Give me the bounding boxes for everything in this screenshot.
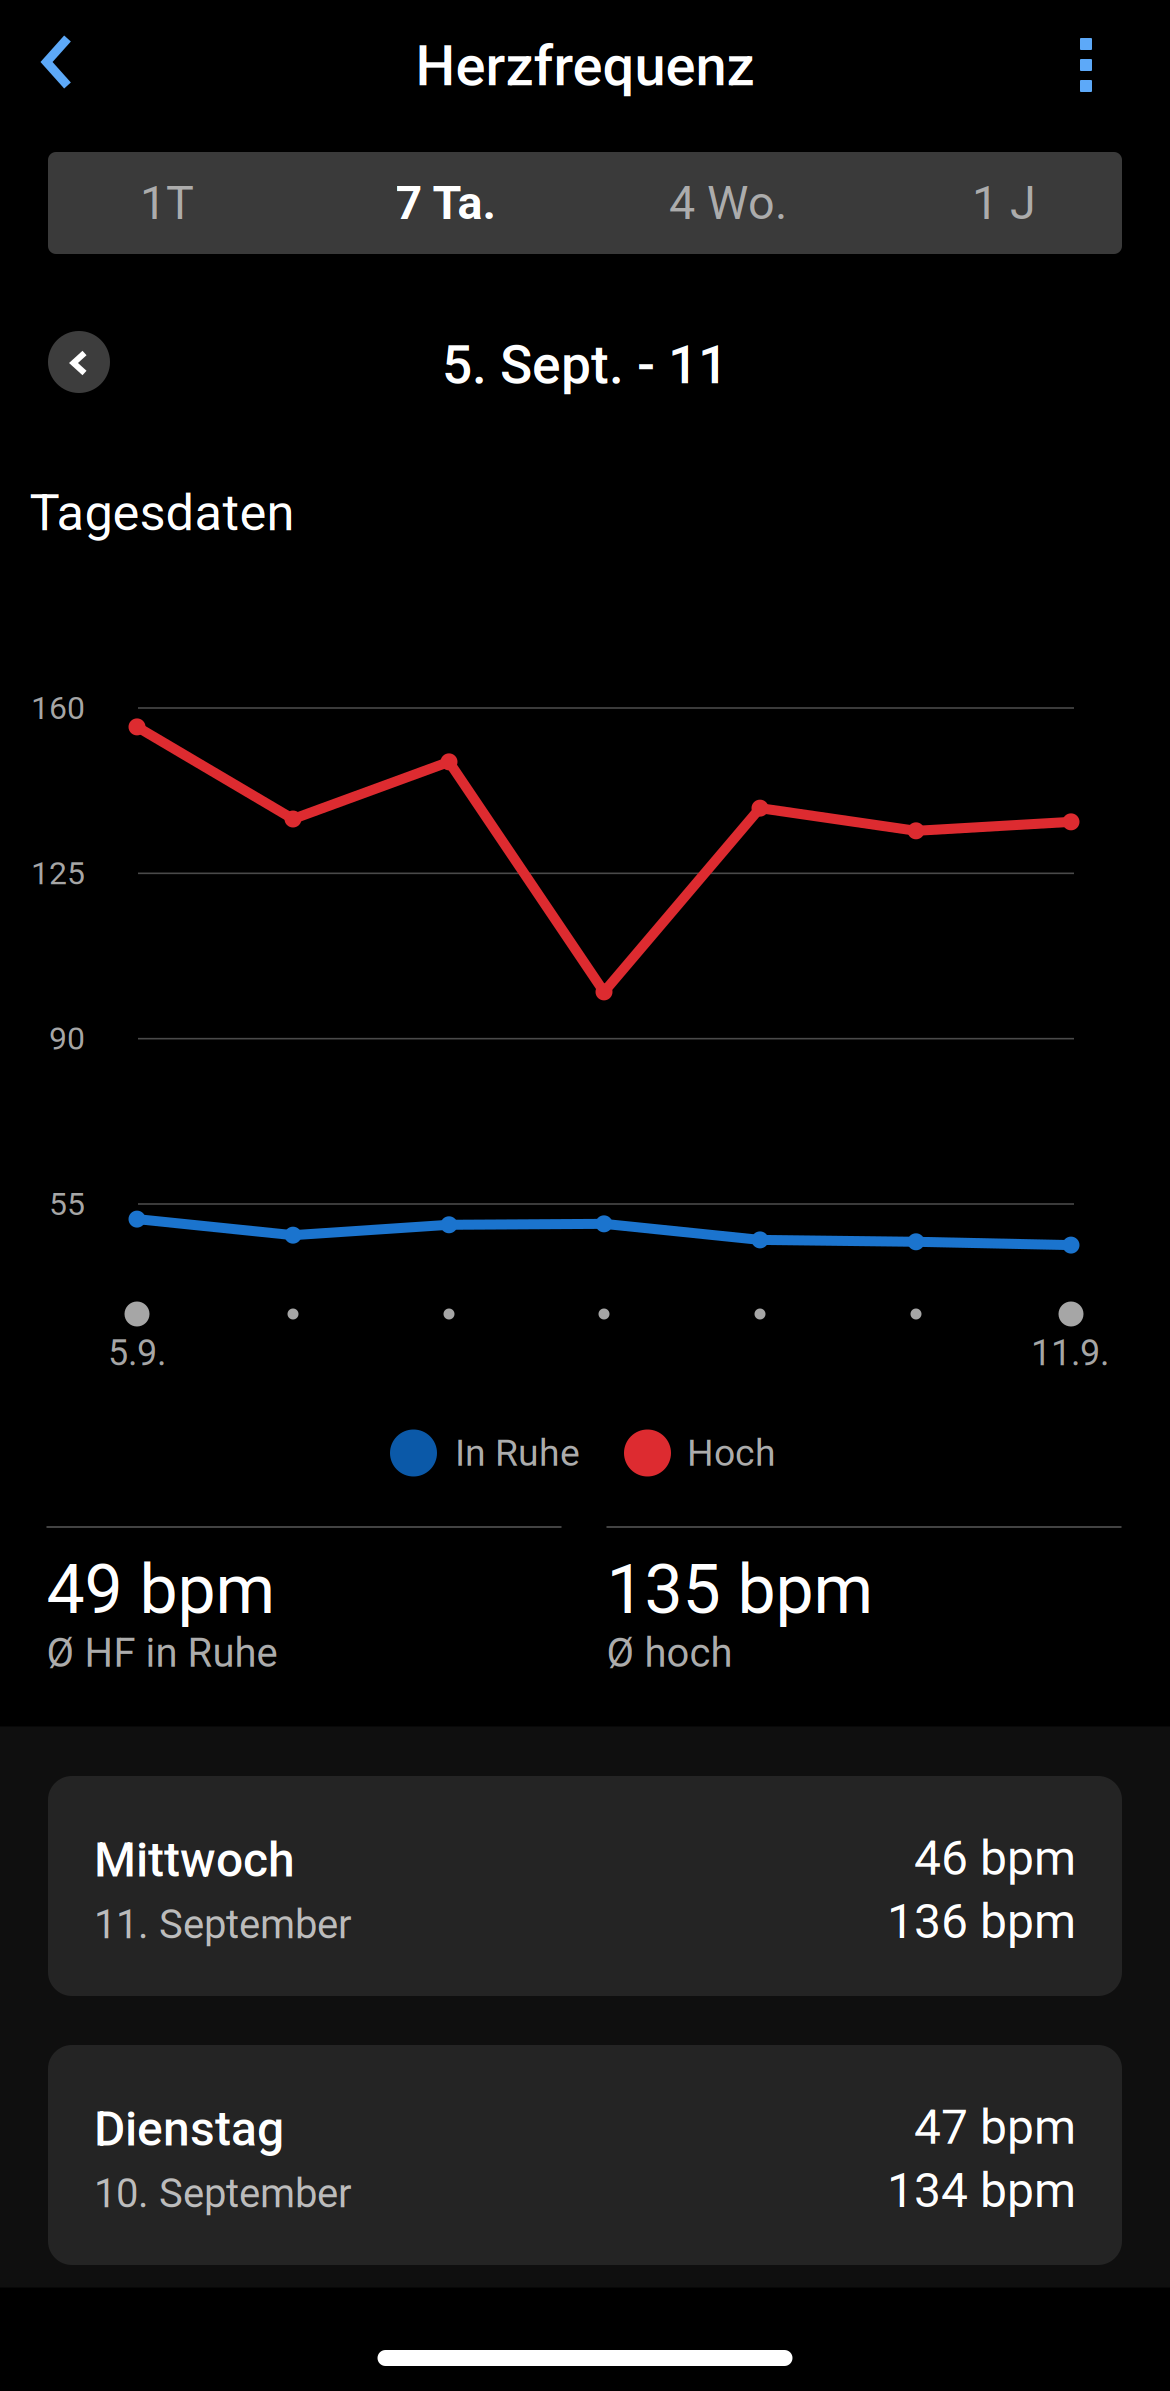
staticText: 46 bpm bbox=[914, 1830, 1076, 1886]
staticText: Dienstag bbox=[94, 2101, 284, 2157]
staticText: 7 Ta. bbox=[395, 176, 496, 230]
staticText: Ø hoch bbox=[606, 1630, 732, 1677]
staticText: 55 bbox=[49, 1185, 85, 1223]
staticText: 136 bpm bbox=[887, 1893, 1076, 1950]
staticText: 11.9. bbox=[1031, 1332, 1109, 1374]
staticText: 1 J bbox=[972, 176, 1036, 230]
staticText: Hoch bbox=[687, 1431, 776, 1475]
staticText: Mittwoch bbox=[94, 1832, 295, 1888]
button[interactable]: Vorherige Woche bbox=[48, 331, 110, 393]
staticText: 5.9. bbox=[108, 1332, 166, 1374]
staticText: 10. September bbox=[94, 2170, 352, 2217]
staticText: 5. Sept. - 11 bbox=[442, 334, 728, 396]
staticText: 47 bpm bbox=[914, 2099, 1076, 2155]
staticText: 125 bbox=[31, 855, 85, 892]
staticText: 160 bbox=[31, 689, 85, 727]
staticText: 49 bpm bbox=[46, 1550, 275, 1630]
button[interactable]: Mittwoch bbox=[48, 1776, 1122, 1996]
staticText: 135 bpm bbox=[606, 1550, 873, 1630]
button[interactable]: Mehr Optionen bbox=[1031, 5, 1141, 125]
staticText: 4 Wo. bbox=[669, 176, 787, 230]
staticText: 1T bbox=[140, 176, 194, 230]
staticText: In Ruhe bbox=[455, 1431, 580, 1475]
button[interactable]: 7 Ta. bbox=[326, 152, 566, 254]
button[interactable]: 1T bbox=[47, 152, 287, 254]
staticText: Herzfrequenz bbox=[415, 33, 754, 99]
staticText: Ø HF in Ruhe bbox=[46, 1630, 277, 1677]
button[interactable]: Zurück bbox=[2, 2, 112, 122]
button[interactable]: 4 Wo. bbox=[608, 152, 848, 254]
button[interactable]: Dienstag bbox=[48, 2045, 1122, 2265]
staticText: Tagesdaten bbox=[29, 483, 294, 543]
button[interactable]: 1 J bbox=[884, 152, 1124, 254]
staticText: 11. September bbox=[94, 1901, 352, 1948]
staticText: 90 bbox=[49, 1020, 85, 1057]
staticText: 134 bpm bbox=[887, 2162, 1076, 2219]
